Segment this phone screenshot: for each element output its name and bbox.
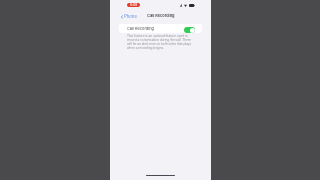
button[interactable]: Phone xyxy=(120,13,138,20)
staticText: Call Recording xyxy=(147,13,175,18)
staticText: This feature is an optional feature used… xyxy=(127,34,192,50)
staticText: Call Recording xyxy=(127,26,154,31)
staticText: Phone xyxy=(124,14,137,19)
button[interactable]: Call Recording xyxy=(119,24,202,33)
button[interactable]: Call Recording toggle, on xyxy=(184,27,195,33)
button[interactable]: Call recording in progress xyxy=(127,3,140,7)
staticText: 0:08 xyxy=(130,3,138,7)
